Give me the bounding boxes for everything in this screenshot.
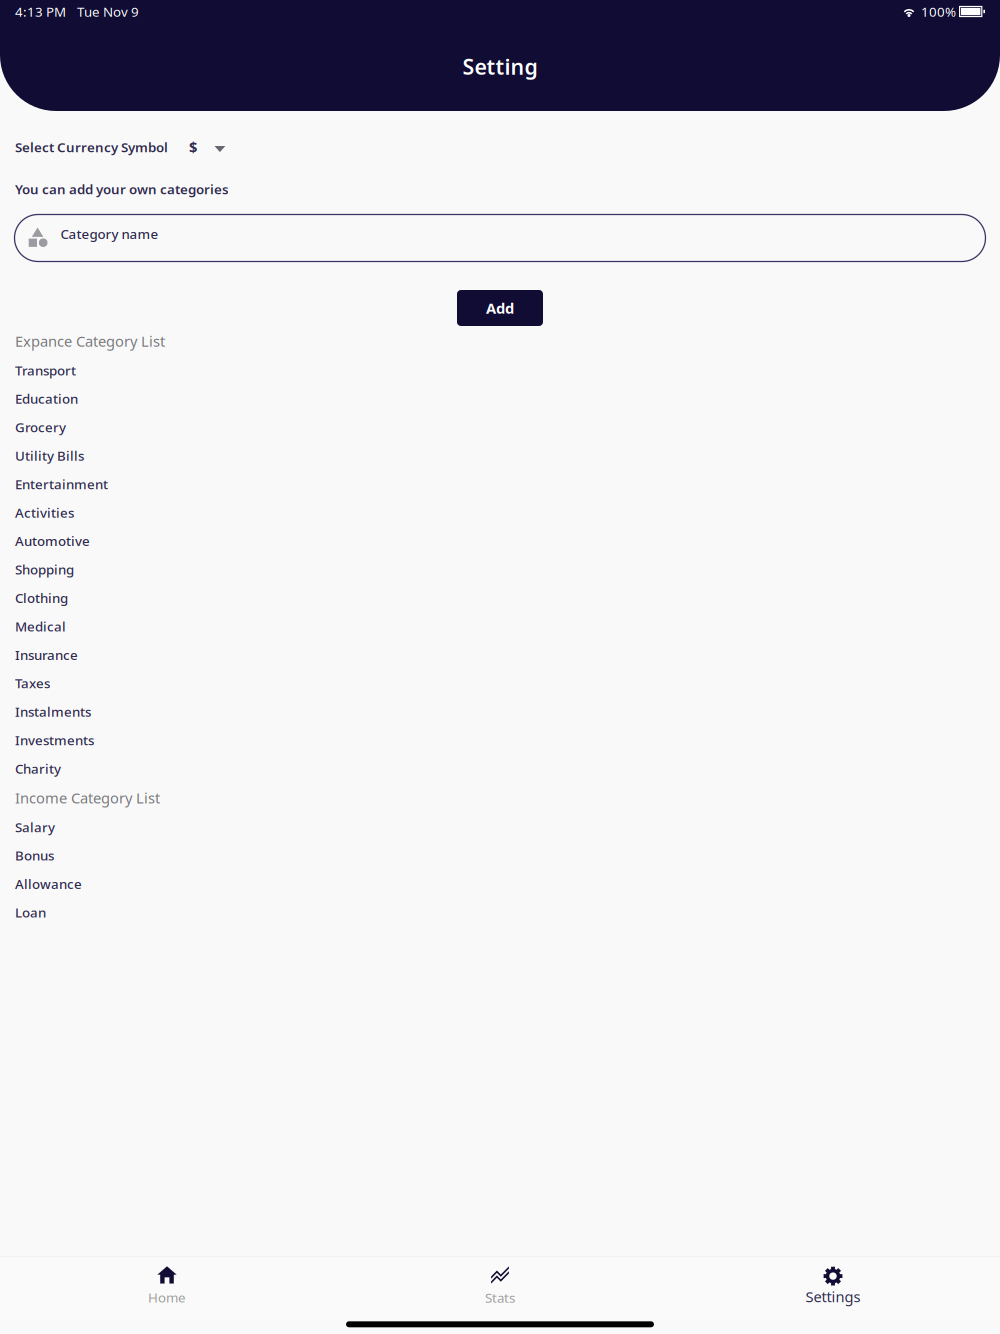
staticText: $	[189, 137, 197, 156]
button[interactable]: Taxes	[0, 669, 1000, 697]
staticText: Select Currency Symbol	[15, 138, 168, 156]
button[interactable]: Bonus	[0, 841, 1000, 870]
staticText: 100%	[921, 3, 956, 20]
button[interactable]: Clothing	[0, 584, 1000, 612]
button[interactable]: Charity	[0, 754, 1000, 783]
button[interactable]: Activities	[0, 498, 1000, 527]
staticText: 4:13 PM	[15, 3, 66, 20]
staticText: Home	[148, 1288, 186, 1306]
button[interactable]: Add	[457, 290, 543, 326]
staticText: Clothing	[15, 589, 68, 607]
button[interactable]: Grocery	[0, 413, 1000, 441]
button[interactable]: Automotive	[0, 527, 1000, 555]
staticText: Medical	[15, 617, 66, 635]
staticText: Income Category List	[15, 788, 160, 807]
button[interactable]: Salary	[0, 813, 1000, 841]
button[interactable]: Investments	[0, 726, 1000, 754]
staticText: Instalments	[15, 703, 91, 720]
button[interactable]: Select currency symbol	[189, 137, 225, 157]
staticText: You can add your own categories	[15, 180, 229, 198]
staticText: Setting	[462, 52, 537, 81]
button[interactable]: Instalments	[0, 697, 1000, 726]
staticText: Allowance	[15, 875, 82, 893]
staticText: Transport	[15, 361, 76, 379]
staticText: Salary	[15, 818, 55, 836]
staticText: Investments	[15, 731, 94, 749]
staticText: Charity	[15, 760, 61, 777]
button[interactable]: Education	[0, 384, 1000, 413]
button[interactable]: Transport	[0, 356, 1000, 384]
button[interactable]: Settings	[666, 1257, 999, 1313]
button[interactable]: Stats	[333, 1257, 666, 1313]
staticText: Education	[15, 390, 78, 407]
button[interactable]: Utility Bills	[0, 441, 1000, 470]
staticText: Shopping	[15, 560, 74, 578]
button[interactable]: Shopping	[0, 555, 1000, 583]
staticText: Insurance	[15, 646, 78, 664]
button[interactable]: Loan	[0, 898, 1000, 926]
button[interactable]: Allowance	[0, 870, 1000, 898]
staticText: Activities	[15, 504, 74, 521]
button[interactable]: Medical	[0, 612, 1000, 640]
button[interactable]: Insurance	[0, 640, 1000, 669]
staticText: Taxes	[15, 674, 50, 692]
button[interactable]: Entertainment	[0, 470, 1000, 498]
button[interactable]: Home	[0, 1257, 333, 1313]
staticText: Utility Bills	[15, 447, 84, 464]
staticText: Expance Category List	[15, 331, 165, 351]
staticText: Add	[486, 298, 514, 318]
staticText: Entertainment	[15, 475, 108, 493]
staticText: Settings	[805, 1287, 860, 1306]
staticText: Category name	[60, 225, 158, 243]
staticText: Stats	[485, 1289, 515, 1306]
staticText: Bonus	[15, 847, 54, 864]
button[interactable]: Category name	[14, 214, 985, 261]
staticText: Loan	[15, 903, 46, 921]
staticText: Tue Nov 9	[77, 3, 139, 20]
staticText: Automotive	[15, 532, 90, 550]
staticText: Grocery	[15, 418, 66, 436]
